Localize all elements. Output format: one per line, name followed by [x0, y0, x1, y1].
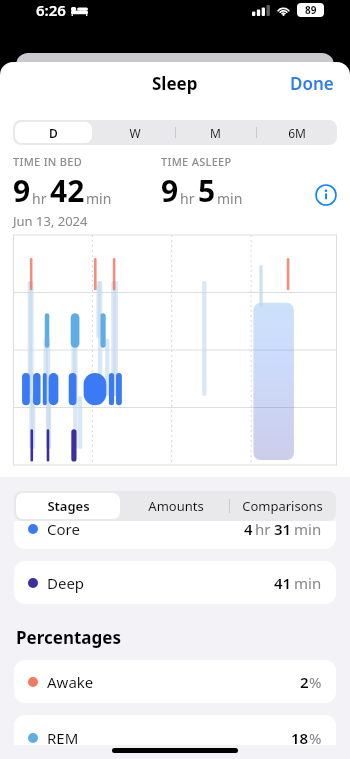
- button[interactable]: Comparisons: [229, 491, 336, 521]
- staticText: Done: [290, 72, 334, 95]
- staticText: 2: [300, 672, 309, 692]
- staticText: Awake: [47, 672, 94, 692]
- staticText: %: [309, 672, 322, 692]
- button[interactable]: REM: [14, 715, 336, 745]
- staticText: M: [210, 125, 221, 141]
- staticText: 6M: [288, 125, 306, 141]
- staticText: 5: [198, 170, 216, 211]
- staticText: REM: [19, 546, 42, 561]
- button[interactable]: W: [94, 120, 175, 145]
- staticText: %: [309, 728, 322, 745]
- button[interactable]: M: [175, 120, 256, 145]
- staticText: Percentages: [16, 626, 121, 649]
- button[interactable]: D: [13, 120, 94, 145]
- staticText: Core: [47, 521, 80, 539]
- staticText: 9: [161, 170, 179, 211]
- staticText: TIME IN BED: [13, 154, 83, 169]
- staticText: Deep: [47, 573, 85, 593]
- staticText: min: [294, 521, 322, 539]
- staticText: 7 PM: [15, 720, 41, 735]
- button[interactable]: 6M: [256, 120, 337, 145]
- staticText: 18: [291, 728, 309, 745]
- staticText: 41: [274, 573, 292, 593]
- staticText: Awake: [19, 489, 53, 504]
- staticText: Stages: [47, 497, 90, 515]
- staticText: 31: [274, 521, 292, 539]
- staticText: Jun 13, 2024: [13, 212, 88, 230]
- staticText: 4: [244, 521, 253, 539]
- staticText: 42: [50, 170, 85, 211]
- staticText: 89: [305, 3, 317, 17]
- staticText: 6:26: [36, 0, 66, 20]
- button[interactable]: Deep: [14, 561, 336, 604]
- button[interactable]: Core: [14, 521, 336, 549]
- staticText: REM: [47, 728, 79, 745]
- staticText: Comparisons: [242, 497, 323, 515]
- button[interactable]: Amounts: [122, 491, 229, 521]
- staticText: TIME ASLEEP: [161, 154, 232, 169]
- button[interactable]: Stages: [14, 491, 122, 521]
- staticText: D: [49, 125, 58, 141]
- staticText: min: [294, 573, 322, 593]
- staticText: 9: [13, 170, 31, 211]
- staticText: Amounts: [148, 497, 204, 515]
- staticText: min: [217, 189, 243, 208]
- staticText: hr: [255, 521, 271, 539]
- staticText: Sleep: [152, 72, 198, 95]
- button[interactable]: Awake: [14, 660, 336, 703]
- staticText: W: [129, 125, 141, 141]
- button[interactable]: Done: [274, 64, 350, 103]
- staticText: min: [86, 189, 112, 208]
- button[interactable]: Information: [315, 184, 337, 206]
- staticText: hr: [180, 189, 195, 208]
- staticText: hr: [32, 189, 47, 208]
